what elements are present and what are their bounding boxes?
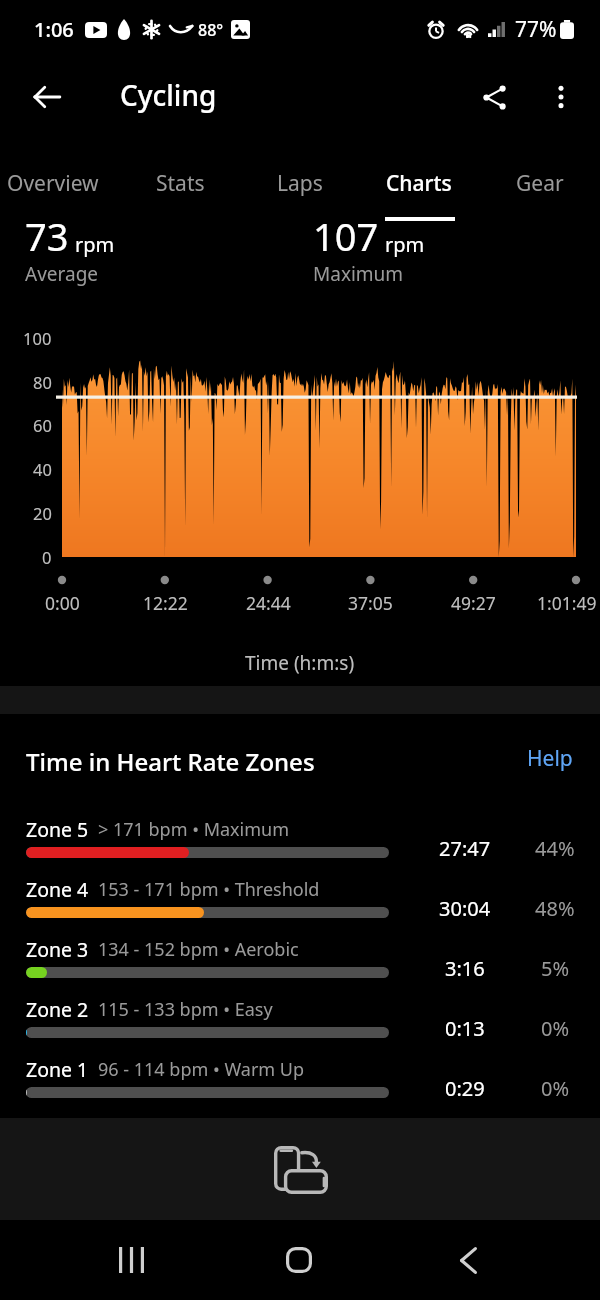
staticText: rpm [75, 231, 115, 258]
button[interactable]: Back [428, 1229, 508, 1291]
staticText: 60 [33, 414, 52, 436]
staticText: 37:05 [348, 591, 393, 615]
staticText: 0% [541, 1015, 570, 1042]
staticText: 80 [33, 371, 52, 393]
staticText: Zone 4 [26, 876, 89, 903]
staticText: Cycling [120, 76, 217, 114]
button[interactable]: Help [515, 734, 585, 782]
staticText: 0:00 [45, 591, 80, 615]
staticText: 5% [541, 955, 570, 982]
staticText: 100 [23, 327, 52, 349]
staticText: 27:47 [439, 835, 491, 862]
staticText: 1:06 [34, 16, 74, 43]
staticText: 73 [25, 210, 69, 262]
staticText: Zone 1 [26, 1056, 89, 1083]
button[interactable]: Back [20, 70, 74, 124]
staticText: 24:44 [246, 591, 291, 615]
staticText: 88° [198, 19, 224, 41]
staticText: 0:13 [445, 1015, 485, 1042]
staticText: Maximum [313, 261, 404, 287]
staticText: 20 [33, 502, 52, 524]
staticText: 134 - 152 bpm • Aerobic [98, 937, 299, 962]
staticText: 40 [33, 458, 52, 480]
button[interactable]: Stats [130, 148, 230, 218]
button[interactable]: Zone 1 [0, 1050, 600, 1110]
button[interactable]: Charts [367, 148, 471, 218]
staticText: 115 - 133 bpm • Easy [98, 997, 273, 1022]
staticText: Help [527, 744, 573, 773]
staticText: Time in Heart Rate Zones [26, 745, 315, 778]
staticText: 3:16 [445, 955, 485, 982]
staticText: 12:22 [143, 591, 188, 615]
staticText: Gear [516, 169, 564, 198]
staticText: Zone 5 [26, 816, 89, 843]
button[interactable]: Overview [0, 148, 112, 218]
staticText: 48% [535, 895, 575, 922]
button[interactable]: Recent apps [91, 1229, 171, 1291]
staticText: Zone 3 [26, 936, 89, 963]
staticText: 0:29 [445, 1075, 485, 1102]
button[interactable]: Zone 5 [0, 810, 600, 870]
staticText: 0 [42, 546, 52, 568]
button[interactable]: Zone 3 [0, 930, 600, 990]
staticText: 77% [515, 15, 557, 44]
staticText: Time (h:m:s) [245, 650, 355, 676]
button[interactable]: Zone 4 [0, 870, 600, 930]
staticText: > 171 bpm • Maximum [98, 817, 290, 842]
button[interactable]: Gear [490, 148, 590, 218]
staticText: 1:01:49 [537, 591, 597, 615]
staticText: Zone 2 [26, 996, 89, 1023]
staticText: 49:27 [451, 591, 496, 615]
staticText: 30:04 [439, 895, 491, 922]
staticText: 96 - 114 bpm • Warm Up [98, 1057, 305, 1082]
staticText: 107 [313, 210, 379, 262]
staticText: rpm [385, 231, 425, 258]
button[interactable]: Laps [252, 148, 348, 218]
button[interactable]: Rotate screen [262, 1140, 340, 1200]
staticText: Charts [386, 169, 452, 198]
staticText: 0% [541, 1075, 570, 1102]
staticText: Stats [156, 169, 205, 198]
button[interactable]: More options [536, 72, 586, 122]
staticText: 44% [535, 835, 575, 862]
button[interactable]: Share [467, 70, 521, 124]
staticText: Overview [7, 169, 99, 198]
button[interactable]: Zone 2 [0, 990, 600, 1050]
staticText: Laps [277, 169, 323, 198]
staticText: Average [25, 261, 99, 287]
button[interactable]: Home [259, 1229, 339, 1291]
staticText: 153 - 171 bpm • Threshold [98, 877, 320, 902]
